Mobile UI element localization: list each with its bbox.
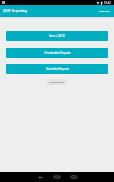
- staticText: QGIS Reporting: [3, 9, 28, 13]
- button[interactable]: Back: [32, 172, 48, 182]
- button[interactable]: Scan a QR ID: [6, 31, 108, 41]
- button[interactable]: Submitted Reports: [6, 64, 108, 74]
- button[interactable]: Assignments: [47, 79, 66, 85]
- button[interactable]: Unsubmitted Reports: [6, 48, 108, 58]
- staticText: Unsubmitted Reports: [44, 51, 71, 55]
- staticText: 10:42: [104, 1, 111, 5]
- button[interactable]: SETTINGS: [95, 7, 114, 16]
- button[interactable]: Home: [49, 172, 65, 182]
- staticText: Scan a QR ID: [49, 34, 65, 38]
- button[interactable]: Recent apps: [66, 172, 82, 182]
- staticText: Submitted Reports: [46, 67, 69, 71]
- staticText: SETTINGS: [99, 10, 110, 13]
- staticText: Assignments: [49, 80, 64, 83]
